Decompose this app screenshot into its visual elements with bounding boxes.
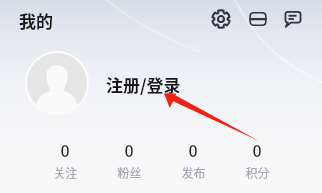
button[interactable]: Avatar	[25, 51, 89, 115]
staticText: 0	[124, 138, 134, 161]
button[interactable]: 0	[225, 138, 289, 181]
button[interactable]: 注册/登录	[106, 72, 181, 97]
button[interactable]: Card list	[244, 5, 272, 33]
staticText: 0	[188, 138, 198, 161]
staticText: 我的	[19, 8, 53, 33]
staticText: 关注	[53, 164, 78, 181]
staticText: 0	[60, 138, 70, 161]
staticText: 0	[252, 138, 262, 161]
staticText: 积分	[245, 164, 270, 181]
button[interactable]: 0	[97, 138, 161, 181]
staticText: 粉丝	[117, 164, 142, 181]
staticText: 注册/登录	[106, 72, 181, 97]
button[interactable]: Messages	[279, 5, 307, 33]
button[interactable]: 0	[161, 138, 225, 181]
button[interactable]: Settings	[207, 5, 235, 33]
button[interactable]: 0	[33, 138, 97, 181]
staticText: 发布	[181, 164, 206, 181]
